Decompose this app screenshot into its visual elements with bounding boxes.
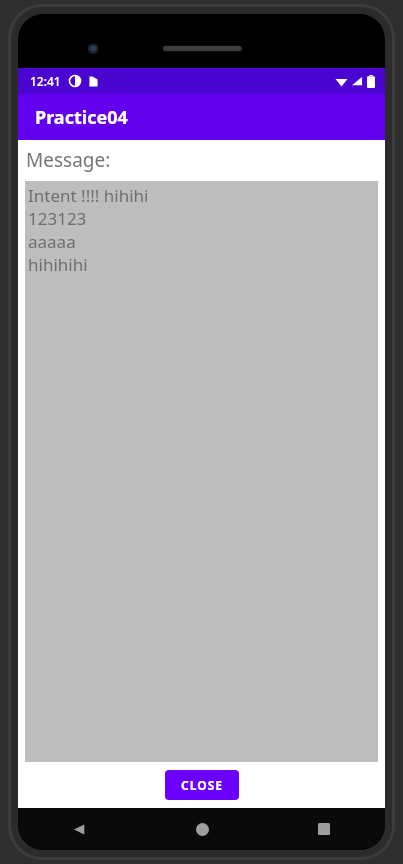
button[interactable]: Back — [18, 808, 141, 850]
staticText: 12:41 — [30, 73, 61, 89]
staticText: aaaaa — [28, 230, 76, 253]
button[interactable]: Recent apps — [263, 808, 385, 850]
button[interactable]: Home — [141, 808, 263, 850]
staticText: Practice04 — [35, 105, 128, 130]
staticText: hihihihi — [28, 253, 88, 276]
staticText: Intent !!!! hihihi — [28, 184, 149, 207]
staticText: CLOSE — [181, 777, 223, 793]
staticText: 123123 — [28, 207, 87, 230]
button[interactable]: CLOSE — [165, 770, 239, 800]
staticText: Message: — [26, 147, 111, 173]
